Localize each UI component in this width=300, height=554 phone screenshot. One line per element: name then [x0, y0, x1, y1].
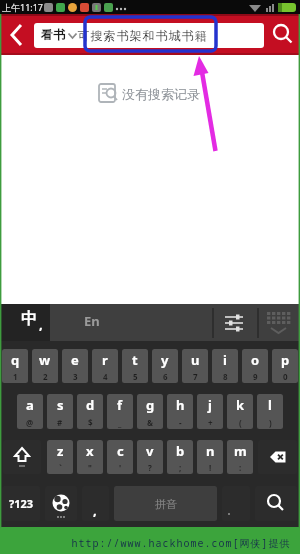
button[interactable]: , — [82, 486, 109, 521]
staticText: : — [239, 462, 242, 473]
button[interactable]: m — [227, 440, 253, 474]
staticText: 3 — [73, 371, 78, 382]
staticText: f — [117, 396, 123, 414]
staticText: 0 — [283, 371, 288, 382]
button[interactable]: x — [77, 440, 103, 474]
button[interactable]: 拼音 — [114, 486, 217, 521]
staticText: j — [208, 396, 212, 414]
staticText: s — [57, 396, 64, 414]
staticText: ; — [179, 462, 182, 473]
button[interactable]: k — [227, 394, 253, 429]
button[interactable] — [3, 440, 41, 474]
staticText: v — [146, 442, 154, 460]
staticText: y — [161, 351, 169, 369]
staticText: , — [93, 501, 97, 519]
staticText: @ — [26, 417, 34, 428]
staticText: 5 — [133, 371, 138, 382]
staticText: l — [268, 396, 272, 414]
staticText: # — [57, 417, 63, 428]
button[interactable]: p — [272, 349, 298, 383]
button[interactable] — [266, 17, 300, 52]
button[interactable]: z — [47, 440, 73, 474]
staticText: ' — [119, 462, 122, 473]
staticText: t — [132, 351, 138, 369]
staticText: 拼音 — [155, 497, 177, 511]
staticText: 可搜索书架和书城书籍 — [77, 28, 207, 43]
staticText: a — [26, 396, 34, 414]
staticText: 8 — [223, 371, 228, 382]
button[interactable]: 。 — [222, 486, 250, 521]
staticText: ? — [148, 462, 152, 473]
button[interactable]: t — [122, 349, 148, 383]
button[interactable] — [258, 440, 297, 474]
staticText: z — [57, 442, 64, 460]
staticText: 没有搜索记录 — [122, 86, 200, 102]
button[interactable]: v — [137, 440, 163, 474]
staticText: 1 — [13, 371, 18, 382]
staticText: ` — [59, 462, 62, 473]
staticText: m — [234, 442, 247, 460]
button[interactable]: n — [197, 440, 223, 474]
button[interactable]: h — [167, 394, 193, 429]
staticText: + — [208, 417, 213, 428]
staticText: c — [117, 442, 124, 460]
staticText: n — [206, 442, 215, 460]
staticText: r — [102, 351, 108, 369]
staticText: i — [223, 351, 227, 369]
staticText: g — [146, 396, 155, 414]
staticText: b — [176, 442, 185, 460]
staticText: $ — [88, 417, 93, 428]
staticText: & — [147, 417, 153, 428]
staticText: 4 — [103, 371, 108, 382]
staticText: , — [39, 315, 43, 333]
button[interactable] — [0, 304, 50, 341]
staticText: x — [86, 442, 94, 460]
button[interactable] — [255, 486, 297, 521]
button[interactable]: http://www.hackhome.com[网侠]提供 — [0, 527, 300, 554]
staticText: 6 — [163, 371, 168, 382]
button[interactable]: l — [257, 394, 283, 429]
staticText: 。 — [227, 505, 236, 516]
staticText: - — [179, 417, 182, 428]
staticText: En — [84, 312, 100, 330]
button[interactable]: c — [107, 440, 133, 474]
button[interactable]: r — [92, 349, 118, 383]
button[interactable]: b — [167, 440, 193, 474]
staticText: " — [88, 462, 92, 473]
staticText: 9 — [253, 371, 258, 382]
button[interactable]: e — [62, 349, 88, 383]
staticText: k — [236, 396, 245, 414]
staticText: d — [86, 396, 95, 414]
button[interactable]: y — [152, 349, 178, 383]
staticText: ! — [209, 462, 212, 473]
staticText: ) — [269, 417, 272, 428]
staticText: w — [39, 351, 51, 369]
button[interactable]: g — [137, 394, 163, 429]
button[interactable]: i — [212, 349, 238, 383]
button[interactable]: 看书 — [34, 23, 264, 48]
button[interactable]: s — [47, 394, 73, 429]
button[interactable]: u — [182, 349, 208, 383]
staticText: ( — [239, 417, 242, 428]
button[interactable] — [45, 486, 77, 521]
staticText: ?123 — [9, 496, 34, 511]
button[interactable]: f — [107, 394, 133, 429]
button[interactable] — [0, 18, 30, 52]
staticText: h — [176, 396, 185, 414]
button[interactable]: ?123 — [2, 486, 40, 521]
staticText: q — [11, 351, 20, 369]
button[interactable]: j — [197, 394, 223, 429]
staticText: p — [281, 351, 290, 369]
staticText: 7 — [193, 371, 198, 382]
button[interactable]: w — [32, 349, 58, 383]
staticText: o — [251, 351, 260, 369]
staticText: 看书 — [41, 27, 65, 42]
button[interactable]: q — [2, 349, 28, 383]
button[interactable]: o — [242, 349, 268, 383]
staticText: e — [71, 351, 79, 369]
button[interactable] — [50, 304, 213, 341]
staticText: 中 — [21, 309, 37, 329]
staticText: 2 — [43, 371, 48, 382]
button[interactable]: d — [77, 394, 103, 429]
button[interactable]: a — [17, 394, 43, 429]
